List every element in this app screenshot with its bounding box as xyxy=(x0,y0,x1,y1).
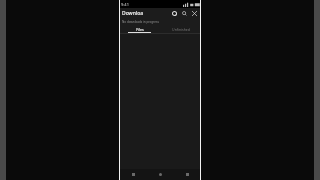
button[interactable]: Back xyxy=(119,169,147,180)
button[interactable]: Search xyxy=(180,9,189,18)
staticText: Unfinished xyxy=(172,27,190,32)
button[interactable]: Files xyxy=(119,25,160,33)
staticText: No downloads in progress xyxy=(122,20,159,24)
button[interactable]: Home xyxy=(147,169,174,180)
button[interactable]: Unfinished xyxy=(160,25,201,33)
staticText: Download xyxy=(122,10,146,17)
button[interactable]: Recents xyxy=(174,169,201,180)
button[interactable]: Close xyxy=(190,9,199,18)
staticText: Files xyxy=(136,27,144,32)
staticText: 9:41 xyxy=(121,2,129,7)
button[interactable]: Settings xyxy=(170,9,179,18)
